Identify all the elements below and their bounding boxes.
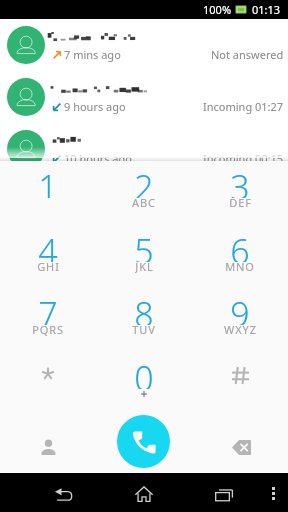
button[interactable]: 10 hours ago	[0, 123, 288, 175]
staticText: 6	[230, 228, 250, 262]
staticText: 0	[134, 355, 154, 389]
button[interactable]: Call	[117, 415, 170, 468]
button[interactable]	[96, 159, 192, 213]
button[interactable]: More options	[254, 473, 288, 512]
staticText: 1	[38, 164, 58, 198]
staticText: 9 hours ago	[64, 99, 126, 114]
staticText: Incoming 00:15	[203, 151, 284, 166]
staticText: 10 hours ago	[64, 151, 132, 166]
staticText: 7 mins ago	[64, 47, 121, 62]
button[interactable]: 9 hours ago	[0, 71, 288, 123]
button[interactable]	[192, 223, 288, 277]
button[interactable]	[0, 286, 96, 340]
button[interactable]	[192, 159, 288, 213]
staticText: WXYZ	[224, 322, 257, 336]
button[interactable]: Back	[40, 473, 88, 512]
button[interactable]	[96, 286, 192, 340]
staticText: 4	[38, 228, 58, 262]
button[interactable]	[96, 223, 192, 277]
staticText: GHI	[37, 259, 60, 273]
staticText: ABC	[132, 195, 156, 209]
staticText: 5	[134, 228, 154, 262]
staticText: PQRS	[32, 322, 64, 336]
staticText: 3	[230, 164, 250, 198]
staticText: 8	[134, 291, 154, 325]
button[interactable]	[192, 286, 288, 340]
button[interactable]	[0, 223, 96, 277]
button[interactable]: Recents	[200, 473, 248, 512]
button[interactable]	[96, 350, 192, 404]
button[interactable]: Home	[120, 473, 168, 512]
button[interactable]: 7 mins ago	[0, 19, 288, 71]
staticText: DEF	[229, 195, 252, 209]
button[interactable]	[0, 159, 96, 213]
staticText: 100%	[203, 2, 232, 17]
button[interactable]: Contacts	[30, 436, 66, 458]
staticText: 2	[134, 164, 154, 198]
button[interactable]	[0, 350, 96, 404]
staticText: 01:13	[252, 2, 281, 17]
button[interactable]: Backspace	[223, 436, 259, 458]
staticText: MNO	[225, 259, 255, 273]
staticText: 7	[38, 291, 58, 325]
staticText: JKL	[135, 259, 154, 273]
staticText: Not answered	[211, 47, 284, 62]
staticText: TUV	[132, 322, 156, 336]
staticText: 9	[230, 291, 250, 325]
button[interactable]	[192, 350, 288, 404]
staticText: Incoming 01:27	[203, 99, 284, 114]
